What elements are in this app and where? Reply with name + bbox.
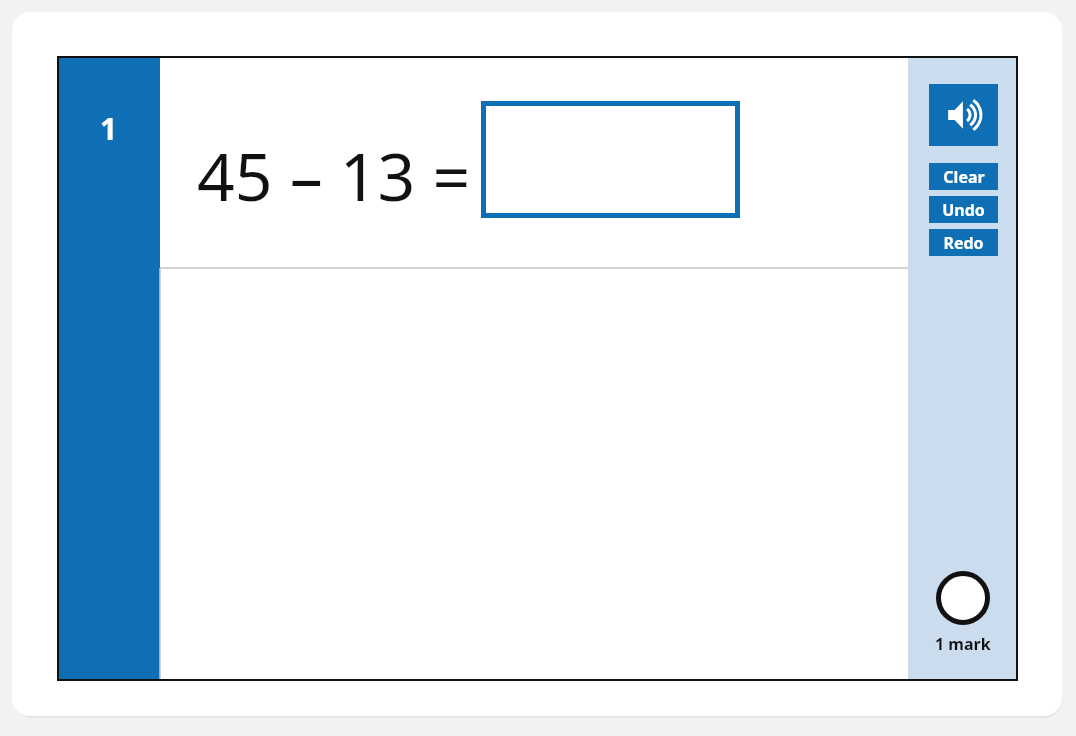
button[interactable]: Clear [929, 163, 998, 190]
staticText: 1 mark [935, 633, 991, 655]
staticText: 45 – 13 = [197, 130, 471, 220]
staticText: Clear [943, 166, 985, 188]
button[interactable]: Undo [929, 196, 998, 223]
button[interactable]: Read question aloud [929, 84, 998, 146]
button[interactable] [481, 101, 740, 218]
button[interactable]: Redo [929, 229, 998, 256]
staticText: Undo [942, 199, 985, 221]
staticText: Redo [943, 232, 984, 254]
staticText: 1 [100, 108, 118, 149]
